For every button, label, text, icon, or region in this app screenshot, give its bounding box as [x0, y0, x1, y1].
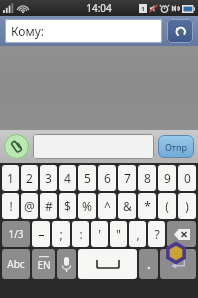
- staticText: ^: [104, 198, 111, 214]
- button[interactable]: ): [178, 193, 196, 219]
- staticText: #: [45, 198, 53, 214]
- button[interactable]: –: [32, 221, 50, 247]
- staticText: !: [9, 198, 13, 214]
- button[interactable]: ^: [98, 193, 116, 219]
- staticText: EN: [37, 258, 51, 272]
- staticText: 9: [164, 170, 171, 186]
- staticText: –: [38, 226, 45, 242]
- button[interactable]: Backspace: [167, 221, 196, 247]
- button[interactable]: ': [91, 221, 108, 247]
- button[interactable]: 3: [40, 165, 57, 191]
- button[interactable]: 1: [2, 165, 19, 191]
- button[interactable]: 8: [138, 165, 156, 191]
- button[interactable]: 2: [21, 165, 38, 191]
- button[interactable]: Кому:: [5, 19, 162, 43]
- staticText: 0: [184, 170, 191, 186]
- staticText: (: [165, 198, 169, 214]
- staticText: ?: [154, 226, 160, 242]
- staticText: *: [144, 198, 151, 214]
- button[interactable]: EN: [32, 249, 55, 279]
- button[interactable]: 5: [78, 165, 96, 191]
- staticText: 1: [141, 5, 145, 13]
- button[interactable]: Enter: [160, 249, 196, 279]
- staticText: ': [98, 226, 101, 242]
- staticText: :: [79, 226, 83, 242]
- staticText: 5: [84, 170, 91, 186]
- staticText: 6: [104, 170, 111, 186]
- button[interactable]: :: [72, 221, 89, 247]
- button[interactable]: Abc: [2, 249, 30, 279]
- button[interactable]: *: [138, 193, 156, 219]
- staticText: 4: [64, 170, 71, 186]
- staticText: ;: [59, 226, 63, 242]
- button[interactable]: ,: [129, 221, 146, 247]
- button[interactable]: !: [2, 193, 19, 219]
- staticText: Кому:: [11, 23, 44, 39]
- staticText: &: [123, 198, 132, 214]
- staticText: Abc: [7, 257, 25, 271]
- staticText: 1: [7, 170, 14, 186]
- button[interactable]: 7: [118, 165, 136, 191]
- button[interactable]: Message input: [33, 134, 154, 159]
- staticText: .: [147, 256, 151, 272]
- button[interactable]: 4: [59, 165, 76, 191]
- staticText: 7: [124, 170, 131, 186]
- button[interactable]: ?: [148, 221, 165, 247]
- button[interactable]: ;: [52, 221, 70, 247]
- button[interactable]: Voice input: [57, 249, 76, 279]
- staticText: ": [116, 226, 121, 242]
- button[interactable]: 1/3: [2, 221, 30, 247]
- staticText: 3: [45, 170, 52, 186]
- staticText: @: [24, 198, 35, 214]
- staticText: ,: [136, 226, 140, 242]
- button[interactable]: Attach: [4, 134, 29, 159]
- button[interactable]: @: [21, 193, 38, 219]
- staticText: 14:04: [86, 1, 112, 15]
- button[interactable]: #: [40, 193, 57, 219]
- staticText: %: [82, 198, 92, 214]
- staticText: $: [64, 198, 71, 214]
- button[interactable]: 9: [158, 165, 176, 191]
- button[interactable]: .: [139, 249, 158, 279]
- button[interactable]: %: [78, 193, 96, 219]
- button[interactable]: &: [118, 193, 136, 219]
- button[interactable]: ": [110, 221, 127, 247]
- button[interactable]: 0: [178, 165, 196, 191]
- button[interactable]: $: [59, 193, 76, 219]
- staticText: ): [185, 198, 189, 214]
- button[interactable]: Space: [78, 249, 137, 279]
- button[interactable]: Отпр: [158, 135, 194, 158]
- button[interactable]: 6: [98, 165, 116, 191]
- staticText: 1/3: [8, 227, 24, 241]
- staticText: Отпр: [165, 141, 187, 153]
- button[interactable]: (: [158, 193, 176, 219]
- button[interactable]: Undo: [167, 19, 193, 43]
- staticText: 2: [26, 170, 33, 186]
- staticText: 8: [144, 170, 151, 186]
